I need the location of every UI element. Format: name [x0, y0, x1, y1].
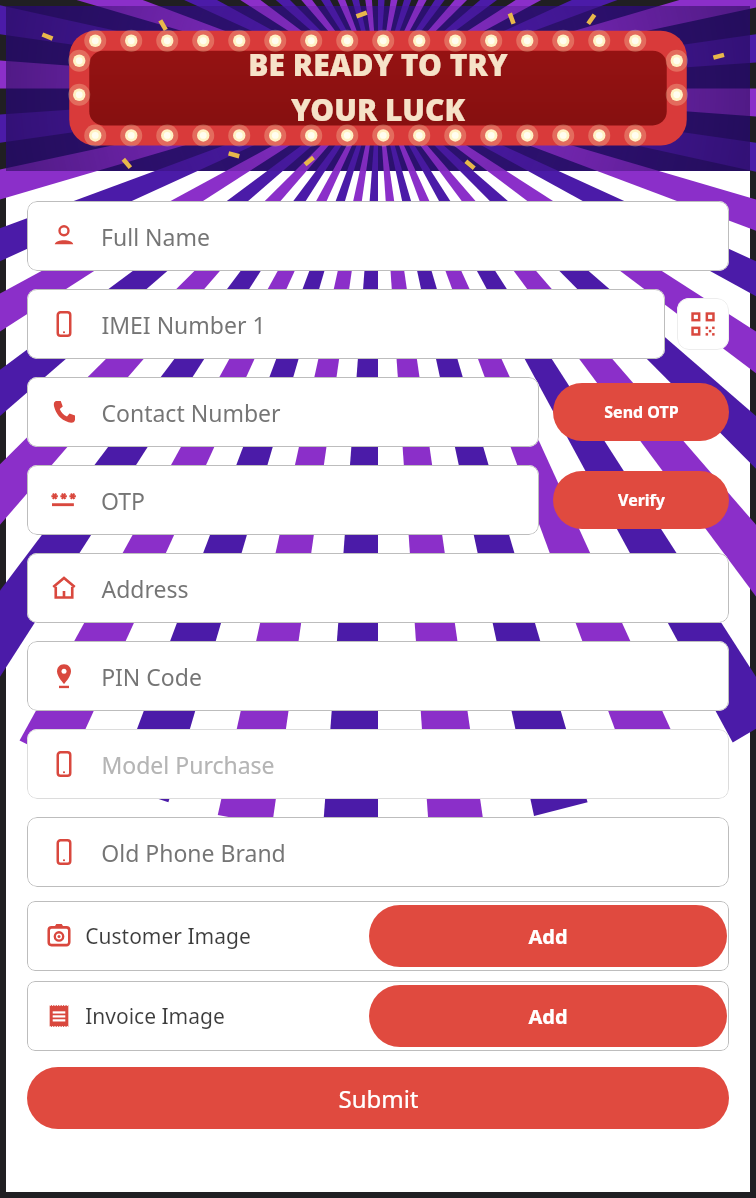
- button[interactable]: OTP: [27, 465, 539, 535]
- staticText: OTP: [101, 485, 145, 516]
- button[interactable]: Full Name: [27, 201, 729, 271]
- staticText: IMEI Number 1: [101, 309, 266, 340]
- staticText: BE READY TO TRY: [248, 44, 508, 85]
- staticText: Old Phone Brand: [101, 837, 286, 868]
- button[interactable]: Scan QR code: [677, 298, 729, 350]
- staticText: Add: [528, 923, 568, 950]
- button[interactable]: PIN Code: [27, 641, 729, 711]
- button[interactable]: Contact Number: [27, 377, 539, 447]
- staticText: Contact Number: [101, 397, 281, 428]
- button[interactable]: Old Phone Brand: [27, 817, 729, 887]
- staticText: Invoice Image: [85, 1002, 225, 1031]
- button[interactable]: Verify: [553, 471, 729, 529]
- button[interactable]: IMEI Number 1: [27, 289, 665, 359]
- button[interactable]: Model Purchase: [27, 729, 729, 799]
- button[interactable]: Add: [369, 985, 727, 1047]
- staticText: Add: [528, 1003, 568, 1030]
- staticText: Customer Image: [85, 922, 251, 951]
- staticText: PIN Code: [101, 661, 202, 692]
- staticText: Model Purchase: [101, 749, 275, 780]
- button[interactable]: Add: [369, 905, 727, 967]
- staticText: Full Name: [101, 221, 210, 252]
- staticText: Verify: [618, 489, 665, 511]
- button[interactable]: Address: [27, 553, 729, 623]
- staticText: Submit: [338, 1082, 419, 1115]
- staticText: YOUR LUCK: [291, 89, 465, 130]
- button[interactable]: Submit: [27, 1067, 729, 1129]
- staticText: Send OTP: [604, 401, 679, 423]
- button[interactable]: Send OTP: [553, 383, 729, 441]
- staticText: Address: [101, 573, 189, 604]
